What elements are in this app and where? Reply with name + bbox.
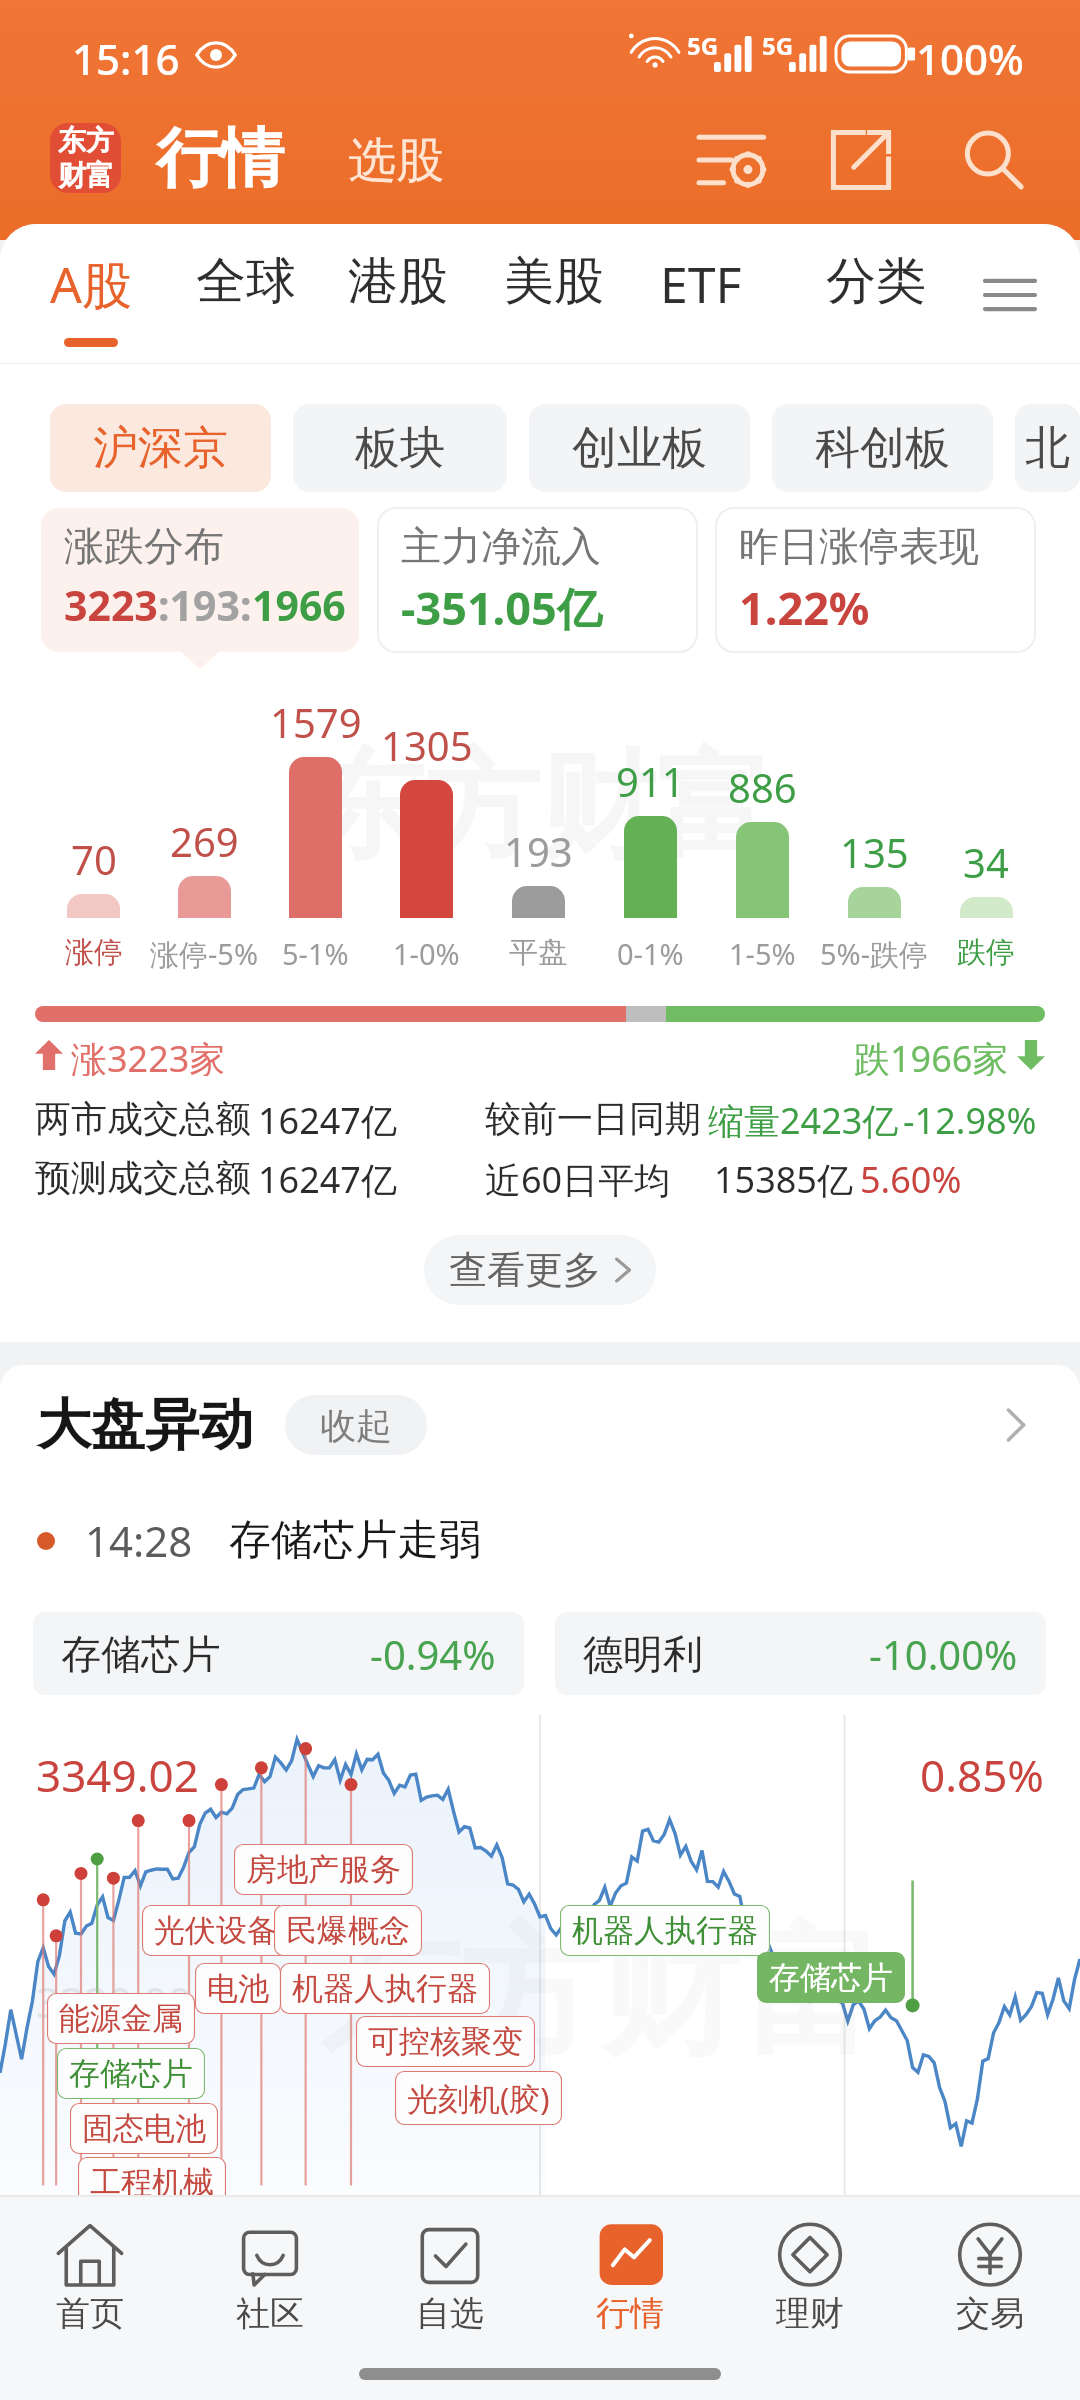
button[interactable] — [378, 508, 697, 652]
staticText: 15385亿 — [714, 1155, 853, 1204]
staticText: 平盘 — [509, 934, 567, 971]
staticText: -10.00% — [869, 1627, 1018, 1681]
button[interactable]: 行情 — [540, 2211, 720, 2347]
staticText: 涨停-5% — [150, 934, 259, 974]
staticText: 近60日平均 — [485, 1155, 671, 1204]
button[interactable]: 首页 — [0, 2211, 180, 2347]
button[interactable]: 机器人执行器 — [560, 1905, 770, 1956]
button[interactable]: 光伏设备 — [142, 1905, 290, 1956]
staticText: 5G — [687, 29, 719, 62]
staticText: 德明利 — [583, 1629, 703, 1679]
staticText: 行情 — [596, 2292, 664, 2335]
staticText: 能源金属 — [59, 1999, 183, 2038]
staticText: 16247亿 — [258, 1155, 397, 1204]
staticText: 0.85% — [920, 1745, 1044, 1805]
staticText: 分类 — [826, 250, 926, 313]
button[interactable]: 电池 — [195, 1963, 281, 2014]
button[interactable]: 港股 — [348, 250, 448, 342]
staticText: 1305 — [381, 718, 473, 772]
staticText: 5%-跌停 — [820, 934, 929, 974]
staticText: 跌1966家 — [854, 1034, 1009, 1076]
button[interactable]: 北 — [1015, 404, 1080, 492]
staticText: 存储芯片 — [769, 1958, 893, 1997]
staticText: 涨停 — [65, 934, 123, 971]
staticText: 100% — [916, 30, 1024, 87]
staticText: 70 — [71, 832, 117, 886]
staticText: 1.22% — [739, 577, 870, 638]
staticText: 电池 — [207, 1969, 269, 2008]
button[interactable]: 机器人执行器 — [280, 1963, 490, 2014]
staticText: 存储芯片 — [61, 1629, 221, 1679]
button[interactable]: 德明利 — [555, 1612, 1046, 1695]
button[interactable]: 理财 — [720, 2211, 900, 2347]
button[interactable]: 分类 — [826, 250, 926, 342]
button[interactable]: 全球 — [196, 250, 296, 342]
staticText: 14:28 — [85, 1512, 193, 1569]
button[interactable]: Open market anomalies — [986, 1395, 1046, 1455]
button[interactable]: 存储芯片 — [33, 1612, 524, 1695]
staticText: 自选 — [416, 2292, 484, 2335]
button[interactable] — [41, 508, 359, 652]
staticText: 财富 — [58, 158, 114, 193]
button[interactable]: Filter settings — [690, 117, 776, 203]
button[interactable]: 科创板 — [772, 404, 993, 492]
button[interactable]: 交易 — [900, 2211, 1080, 2347]
button[interactable]: 房地产服务 — [234, 1844, 413, 1895]
staticText: 光刻机(胶) — [407, 2077, 550, 2119]
button[interactable]: 光刻机(胶) — [395, 2071, 562, 2125]
button[interactable]: 工程机械 — [78, 2157, 226, 2195]
button[interactable]: 收起 — [285, 1395, 427, 1455]
staticText: 板块 — [355, 420, 445, 477]
button[interactable]: ETF — [660, 250, 742, 347]
staticText: 理财 — [776, 2292, 844, 2335]
staticText: 交易 — [956, 2292, 1024, 2335]
button[interactable]: 沪深京 — [50, 404, 271, 492]
staticText: 跌停 — [957, 934, 1015, 971]
button[interactable] — [716, 508, 1035, 652]
button[interactable]: Share — [818, 117, 904, 203]
button[interactable]: 存储芯片 — [57, 2048, 205, 2099]
staticText: 可控核聚变 — [368, 2022, 523, 2061]
button[interactable]: 创业板 — [529, 404, 750, 492]
button[interactable]: 查看更多 — [424, 1235, 656, 1305]
staticText: 东方财富 — [308, 734, 772, 880]
staticText: 机器人执行器 — [572, 1911, 758, 1950]
button[interactable]: 存储芯片 — [757, 1952, 905, 2003]
staticText: 东方 — [58, 123, 114, 158]
staticText: 193 — [504, 824, 573, 878]
staticText: 涨跌分布 — [64, 521, 224, 571]
button[interactable]: Search — [950, 117, 1036, 203]
staticText: 5.60% — [860, 1155, 962, 1204]
staticText: 大盘异动 — [37, 1391, 253, 1459]
staticText: 行情 — [156, 118, 284, 199]
staticText: 存储芯片 — [69, 2054, 193, 2093]
staticText: 工程机械 — [90, 2163, 214, 2195]
staticText: 3349.02 — [36, 1745, 199, 1805]
staticText: :193: — [158, 577, 252, 633]
staticText: 沪深京 — [93, 420, 228, 477]
staticText: -351.05亿 — [401, 577, 602, 638]
button[interactable]: More categories — [975, 260, 1045, 330]
staticText: 16247亿 — [258, 1096, 397, 1145]
staticText: 机器人执行器 — [292, 1969, 478, 2008]
button[interactable]: A股 — [50, 250, 132, 347]
staticText: 房地产服务 — [246, 1850, 401, 1889]
button[interactable]: 民爆概念 — [274, 1905, 422, 1956]
staticText: -12.98% — [903, 1096, 1037, 1145]
staticText: 较前一日同期 — [485, 1096, 701, 1141]
button[interactable]: 可控核聚变 — [356, 2016, 535, 2067]
staticText: 1-5% — [729, 934, 796, 973]
staticText: 0-1% — [617, 934, 684, 973]
staticText: 135 — [840, 825, 909, 879]
button[interactable]: 固态电池 — [70, 2103, 218, 2154]
button[interactable]: 美股 — [504, 250, 604, 342]
staticText: 15:16 — [72, 30, 180, 87]
button[interactable]: 板块 — [293, 404, 507, 492]
staticText: 3320.00 — [36, 1973, 192, 2030]
staticText: 光伏设备 — [154, 1911, 278, 1950]
button[interactable]: 自选 — [360, 2211, 540, 2347]
staticText: 首页 — [56, 2292, 124, 2335]
button[interactable]: 能源金属 — [47, 1993, 195, 2044]
staticText: 主力净流入 — [401, 521, 601, 571]
button[interactable]: 社区 — [180, 2211, 360, 2347]
